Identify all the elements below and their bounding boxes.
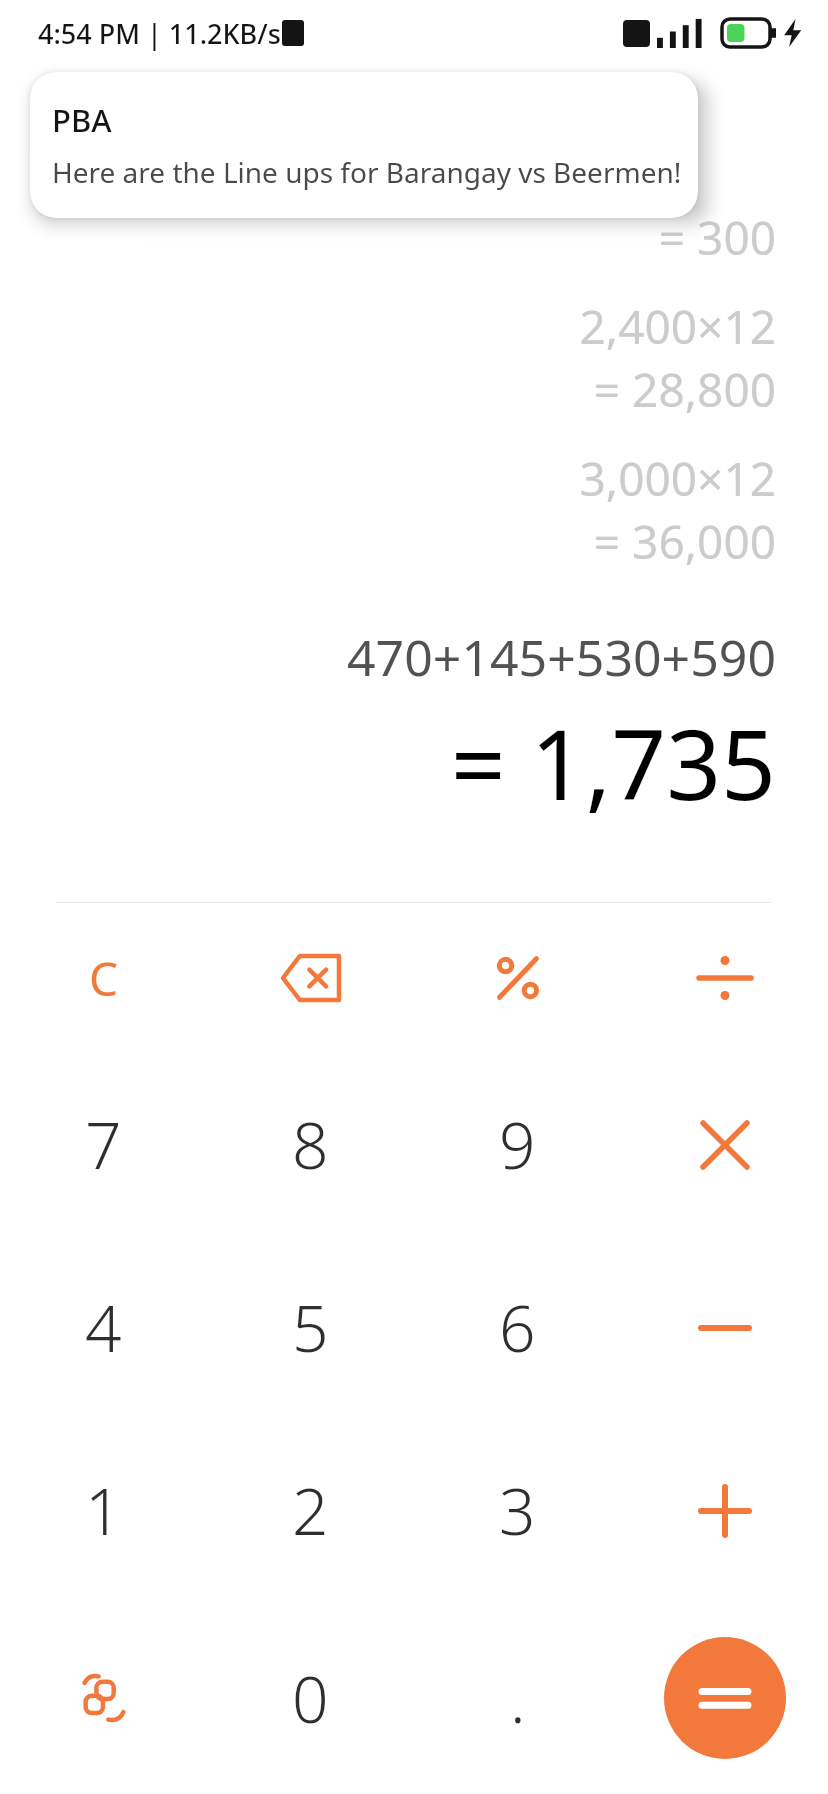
button[interactable]: .	[414, 1602, 621, 1794]
staticText: Here are the Line ups for Barangay vs Be…	[52, 153, 682, 191]
staticText: PBA	[52, 99, 112, 141]
button[interactable]: 6	[414, 1236, 621, 1419]
button[interactable]: 2	[207, 1419, 414, 1602]
staticText: C	[89, 947, 119, 1010]
button[interactable]: 3	[414, 1419, 621, 1602]
staticText: 3,000×12	[579, 447, 776, 510]
button[interactable]: Plus	[621, 1419, 828, 1602]
staticText: 2	[292, 1467, 329, 1554]
button[interactable]: Percent	[414, 903, 621, 1053]
staticText: 7	[85, 1101, 122, 1188]
staticText: = 1,735	[450, 697, 776, 828]
staticText: 2,400×12	[579, 295, 776, 358]
staticText: = 300	[658, 206, 776, 269]
staticText: 4	[85, 1284, 122, 1371]
button[interactable]: Minus	[621, 1236, 828, 1419]
staticText: 6	[499, 1284, 536, 1371]
button[interactable]: 0	[207, 1602, 414, 1794]
button[interactable]: Equals	[664, 1637, 786, 1759]
staticText: 5	[292, 1284, 329, 1371]
staticText: 0	[292, 1655, 329, 1742]
staticText: 470+145+530+590	[347, 623, 776, 691]
button[interactable]: Clear	[0, 903, 207, 1053]
button[interactable]: Backspace	[207, 903, 414, 1053]
staticText: = 28,800	[593, 358, 776, 421]
staticText: 3	[499, 1467, 536, 1554]
button[interactable]: Multiply	[621, 1053, 828, 1236]
button[interactable]: 7	[0, 1053, 207, 1236]
staticText: = 36,000	[593, 510, 776, 573]
staticText: 4:54 PM | 11.2KB/s	[38, 15, 281, 52]
staticText: 8	[292, 1101, 329, 1188]
button[interactable]: 5	[207, 1236, 414, 1419]
button[interactable]: 9	[414, 1053, 621, 1236]
button[interactable]: Divide	[621, 903, 828, 1053]
button[interactable]: 4	[0, 1236, 207, 1419]
button[interactable]: 1	[0, 1419, 207, 1602]
button[interactable]: 8	[207, 1053, 414, 1236]
button[interactable]: PBA	[30, 72, 698, 218]
staticText: .	[510, 1655, 526, 1742]
button[interactable]: Convert units	[0, 1602, 207, 1794]
staticText: 1	[85, 1467, 122, 1554]
staticText: 9	[499, 1101, 536, 1188]
